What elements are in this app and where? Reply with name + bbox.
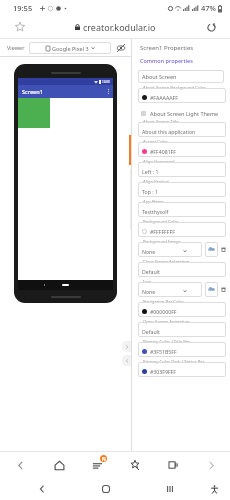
button[interactable]: Primary Color / Title Bar [138, 342, 226, 357]
button[interactable]: Tabs [164, 456, 182, 474]
button[interactable]: Background Color [138, 222, 226, 237]
staticText: creator.kodular.io [83, 21, 156, 33]
staticText: Primary Color Dark / Status Bar [143, 359, 205, 365]
staticText: Navigation Bar Color [143, 299, 184, 305]
staticText: About Screen Background Color [143, 85, 206, 91]
staticText: About Screen Light Theme [150, 110, 219, 117]
staticText: #FFFFFFFF [150, 228, 175, 235]
button[interactable]: More options [108, 89, 109, 94]
button[interactable]: Back [34, 481, 50, 497]
staticText: About Screen [142, 73, 177, 80]
button[interactable]: Reload [203, 19, 219, 35]
staticText: Screen1 [22, 88, 43, 95]
button[interactable]: Accessibility [202, 485, 226, 494]
staticText: #3F51B5FF [150, 348, 177, 355]
staticText: Icon [143, 279, 152, 285]
button[interactable]: Delete [220, 282, 226, 297]
button[interactable]: Navigation Bar Color [138, 302, 226, 317]
button[interactable]: Collapse [122, 355, 131, 366]
button[interactable]: Close Screen Animation [138, 262, 226, 277]
button[interactable]: Align Horizontal [138, 162, 226, 177]
staticText: Background Color [143, 219, 179, 225]
staticText: Align Horizontal [143, 159, 175, 165]
staticText: Accent Color [143, 139, 168, 145]
staticText: #303F9FFF [150, 368, 176, 375]
staticText: Top : 1 [142, 188, 158, 195]
staticText: #FF4081FF [150, 148, 176, 155]
button[interactable]: Forward [202, 456, 220, 474]
staticText: Google Pixel 3 [52, 45, 89, 52]
button[interactable]: Google Pixel 3 [29, 42, 111, 54]
button[interactable]: Back [11, 456, 29, 474]
staticText: Align Vertical [143, 179, 169, 185]
button[interactable]: Background Image [138, 242, 202, 257]
staticText: Left : 1 [142, 168, 159, 175]
button[interactable]: Upload [205, 282, 218, 297]
staticText: Default [142, 328, 160, 335]
staticText: #000000FF [150, 308, 177, 315]
staticText: 19:55 [13, 3, 33, 13]
button[interactable]: About Screen [138, 70, 224, 83]
button[interactable]: Upload [205, 242, 218, 257]
staticText: Screen1 Properties [140, 44, 194, 52]
button[interactable]: Common properties [140, 57, 193, 64]
button[interactable]: Icon [138, 282, 202, 297]
button[interactable]: Delete [220, 242, 226, 257]
button[interactable]: creator.kodular.io [75, 21, 156, 33]
button[interactable]: Primary Color Dark / Status Bar [138, 362, 226, 377]
button[interactable]: Recents [162, 481, 178, 497]
button[interactable]: About Screen Light Theme [141, 108, 221, 119]
button[interactable]: About Screen Background Color [138, 88, 226, 103]
staticText: 47% [201, 3, 216, 13]
button[interactable]: Downloads [88, 456, 106, 474]
button[interactable]: Align Vertical [138, 182, 226, 197]
button[interactable]: About Screen Title [138, 122, 226, 137]
staticText: App Name [143, 199, 164, 205]
staticText: Close Screen Animation [143, 259, 190, 265]
staticText: N [102, 456, 106, 462]
button[interactable]: Open Screen Animation [138, 322, 226, 337]
staticText: Background Image [143, 239, 181, 245]
button[interactable]: Expand [122, 341, 131, 352]
staticText: 12:00 [102, 80, 110, 84]
staticText: None [142, 288, 156, 295]
button[interactable]: App Name [138, 202, 226, 217]
staticText: Default [142, 268, 160, 275]
staticText: #FAAAAAFF [150, 94, 178, 101]
button[interactable]: Home [98, 481, 114, 497]
staticText: Primary Color / Title Bar [143, 339, 191, 345]
staticText: Testthysolf [142, 208, 169, 215]
staticText: Open Screen Animation [143, 319, 190, 325]
button[interactable]: Accent Color [138, 142, 226, 157]
staticText: None [142, 248, 156, 255]
staticText: About this application [142, 128, 196, 135]
staticText: About Screen Title [143, 119, 179, 125]
button[interactable]: Home [50, 456, 68, 474]
staticText: Viewer [7, 44, 25, 51]
button[interactable]: Bookmarks [126, 456, 144, 474]
button[interactable]: Bookmark [12, 19, 28, 35]
button[interactable]: Toggle visibility [115, 42, 127, 54]
